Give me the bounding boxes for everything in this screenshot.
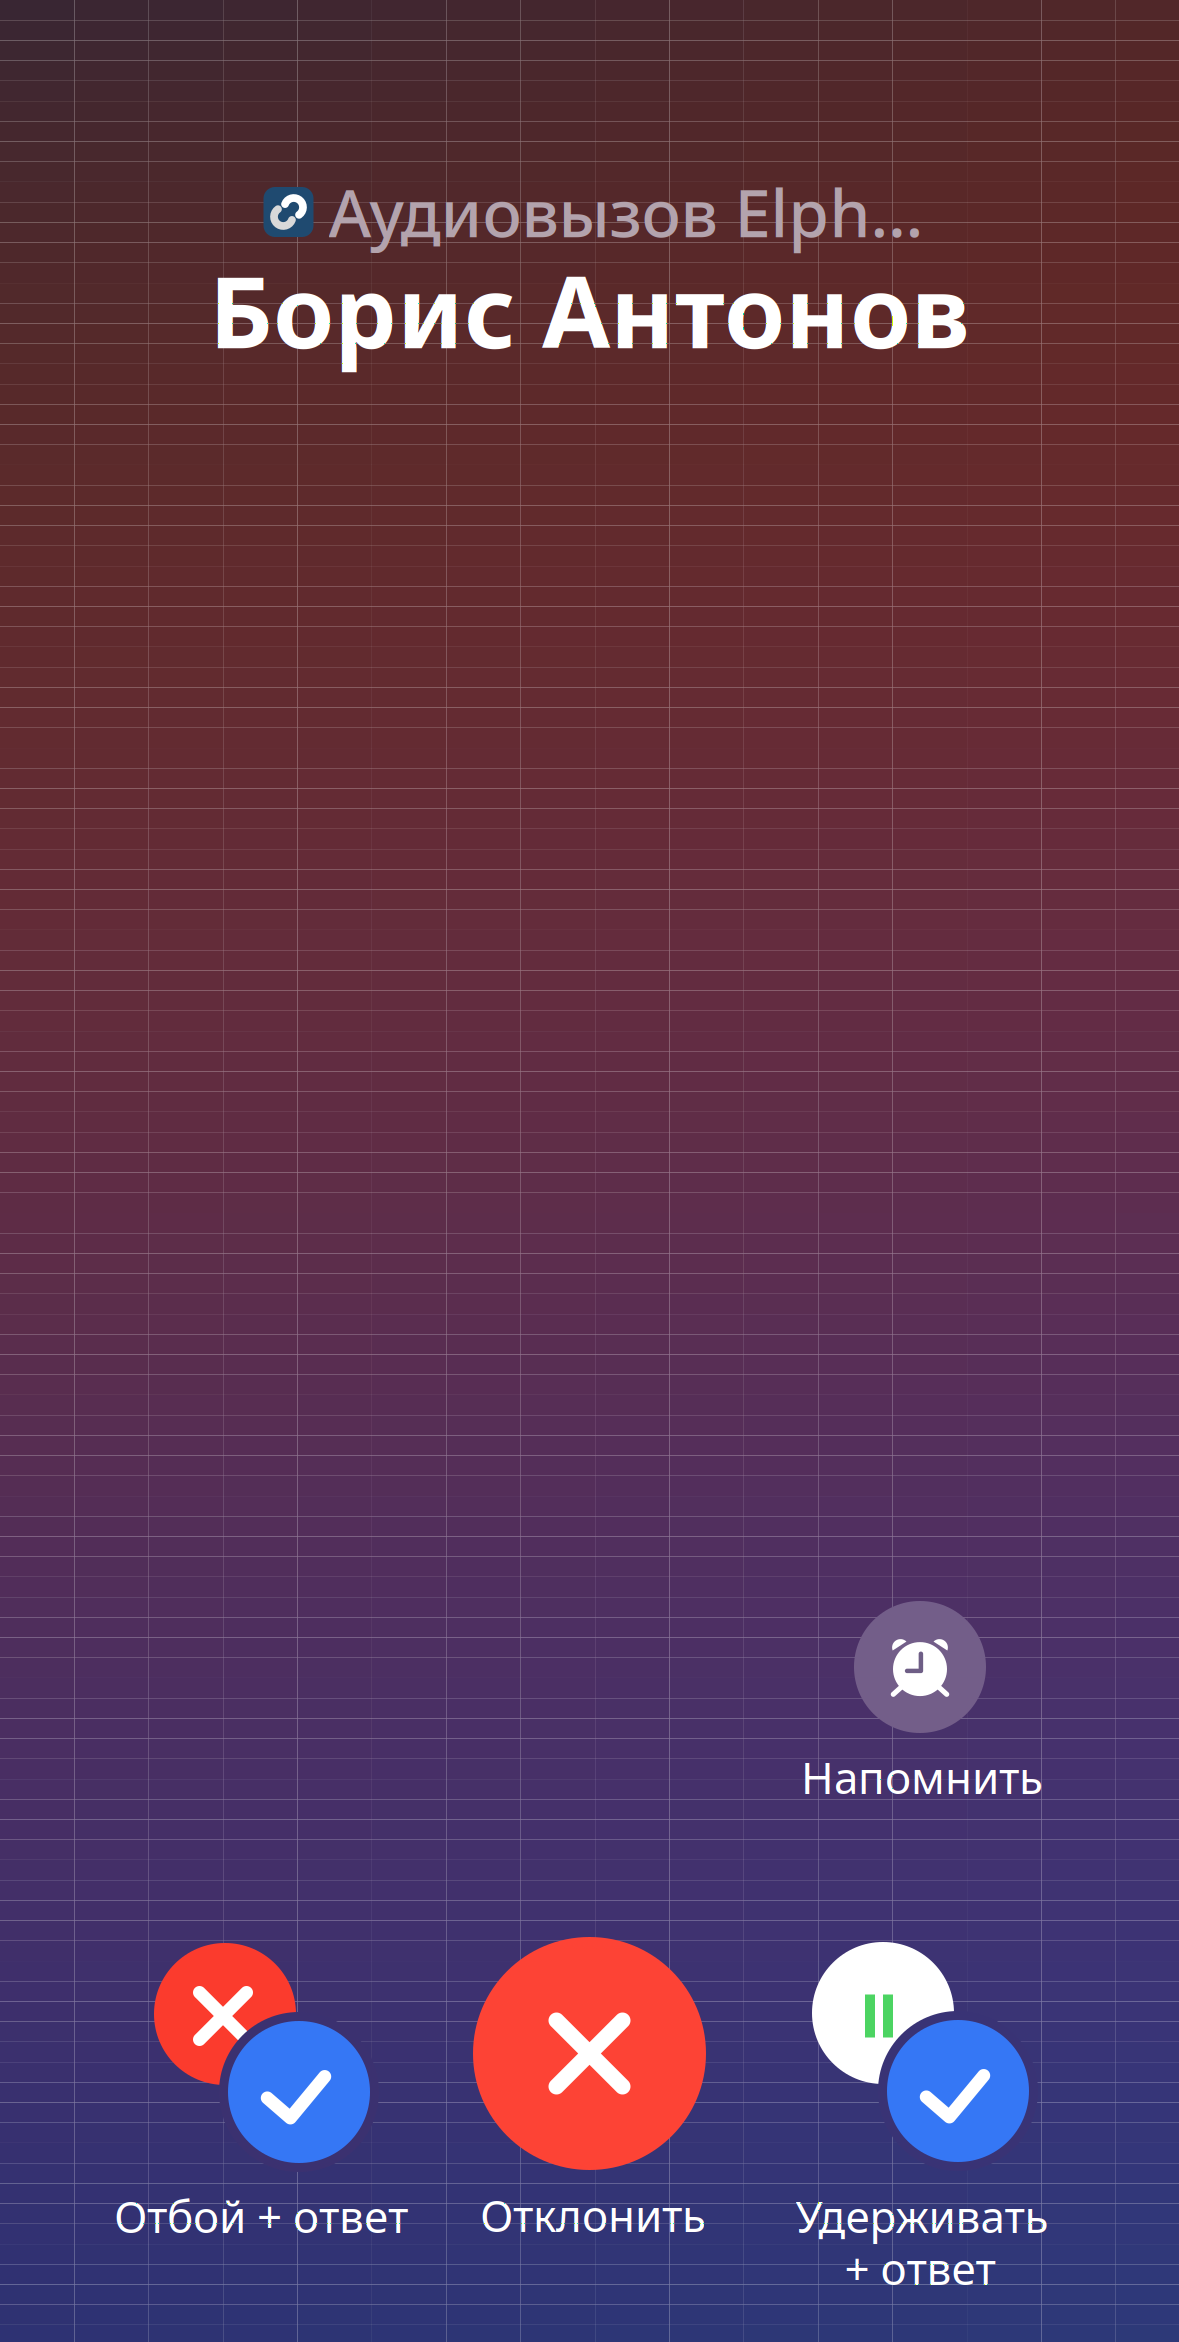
staticText: Отклонить	[480, 2186, 706, 2244]
staticText: Удерживать	[795, 2187, 1048, 2245]
staticText: Борис Антонов	[209, 244, 970, 375]
button[interactable]: Удерживать	[788, 1942, 1128, 2342]
button[interactable]: Напомнить	[770, 1601, 1070, 1831]
staticText: Напомнить	[801, 1748, 1043, 1806]
button[interactable]: Отклонить	[420, 1937, 760, 2307]
button[interactable]: Отбой + ответ	[113, 1943, 453, 2313]
staticText: Отбой + ответ	[114, 2187, 408, 2245]
staticText: Аудиовызов Elph…	[328, 169, 923, 255]
staticText: + ответ	[844, 2239, 995, 2297]
